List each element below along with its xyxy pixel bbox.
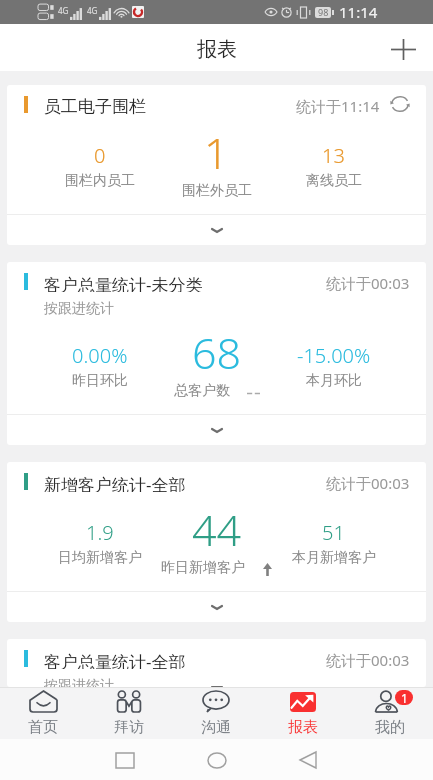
staticText: 统计于11:14 (296, 96, 380, 115)
button[interactable]: 沟通 (172, 687, 259, 739)
button[interactable]: Recents (111, 746, 139, 774)
staticText: 68 (192, 323, 242, 382)
button[interactable]: Back (294, 746, 322, 774)
staticText: 4G (87, 5, 98, 16)
staticText: 统计于00:03 (326, 273, 410, 292)
staticText: 13 (322, 142, 345, 169)
staticText: 离线员工 (306, 172, 362, 190)
staticText: 我的 (375, 718, 405, 737)
staticText: 0 (94, 142, 106, 169)
staticText: 98 (318, 6, 329, 18)
button[interactable]: Add (385, 31, 421, 67)
button[interactable]: Expand (7, 215, 426, 245)
staticText: 本月环比 (306, 372, 362, 390)
button[interactable]: 新增客户统计-全部 (7, 462, 426, 622)
staticText: 员工电子围栏 (44, 96, 146, 115)
staticText: 客户总量统计-全部 (44, 650, 186, 669)
button[interactable]: Expand (7, 415, 426, 445)
staticText: 11:14 (339, 2, 378, 22)
button[interactable]: Home (203, 746, 231, 774)
staticText: 1 (401, 690, 408, 705)
staticText: 报表 (197, 37, 237, 62)
staticText: 报表 (288, 718, 318, 737)
button[interactable]: 拜访 (86, 687, 172, 739)
staticText: 沟通 (201, 718, 231, 737)
staticText: 4G (58, 5, 69, 16)
staticText: 客户总量统计-未分类 (44, 273, 203, 292)
staticText: 围栏外员工 (182, 182, 252, 200)
button[interactable]: 首页 (0, 687, 86, 739)
button[interactable]: 客户总量统计-全部 (7, 639, 426, 687)
staticText: 总客户数 (174, 382, 230, 400)
staticText: 围栏内员工 (65, 172, 135, 190)
staticText: 0.00% (72, 342, 128, 369)
staticText: 首页 (28, 718, 58, 737)
staticText: 1.9 (86, 519, 114, 546)
staticText: 本月新增客户 (292, 549, 376, 567)
staticText: 51 (322, 519, 345, 546)
staticText: 拜访 (114, 718, 144, 737)
staticText: 日均新增客户 (58, 549, 142, 567)
button[interactable]: 员工电子围栏 (7, 85, 426, 245)
staticText: -15.00% (297, 342, 371, 369)
staticText: 统计于00:03 (326, 650, 410, 669)
staticText: 44 (192, 500, 242, 559)
staticText: 按跟进统计 (44, 677, 114, 687)
button[interactable]: 我的 (346, 687, 433, 739)
staticText: 昨日新增客户 (161, 559, 245, 577)
button[interactable]: 报表 (259, 687, 346, 739)
button[interactable]: 客户总量统计-未分类 (7, 262, 426, 445)
staticText: 按跟进统计 (44, 300, 114, 315)
staticText: 昨日环比 (72, 372, 128, 390)
staticText: 新增客户统计-全部 (44, 473, 186, 492)
staticText: 统计于00:03 (326, 473, 410, 492)
button[interactable]: Expand (7, 592, 426, 622)
staticText: 1 (204, 123, 229, 182)
